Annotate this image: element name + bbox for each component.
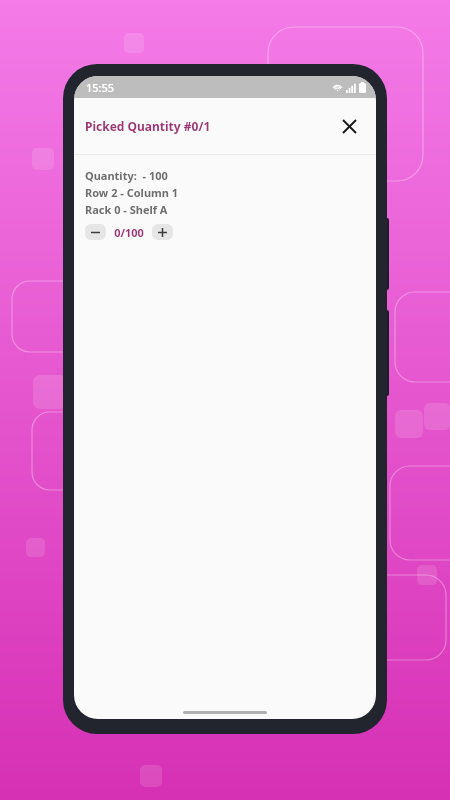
staticText: 15:55 bbox=[86, 80, 115, 95]
staticText: Rack 0 - Shelf A bbox=[85, 202, 168, 217]
staticText: Picked Quantity #0/1 bbox=[85, 118, 211, 134]
button[interactable]: Increase bbox=[152, 224, 173, 240]
staticText: 0/100 bbox=[108, 225, 150, 240]
staticText: Quantity: - 100 bbox=[85, 168, 168, 183]
button[interactable]: Close bbox=[336, 113, 362, 139]
button[interactable]: Decrease bbox=[85, 224, 106, 240]
staticText: Row 2 - Column 1 bbox=[85, 185, 179, 200]
